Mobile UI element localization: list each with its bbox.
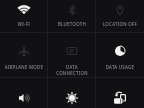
button[interactable]: Location [96,0,144,108]
button[interactable]: Airplane mode [0,0,48,108]
staticText: WI-FI [0,21,48,27]
staticText: LOCATION OFF [96,21,144,27]
button[interactable]: Brightness [48,0,96,108]
staticText: AIRPLANE MODE [0,64,48,70]
staticText: DATA USAGE [96,64,144,70]
button[interactable]: Bluetooth [48,0,96,108]
staticText: BLUETOOTH [48,21,96,27]
button[interactable]: Data usage [96,0,144,108]
button[interactable]: Sound [0,0,48,108]
staticText: DATA CONNECTION [48,64,96,76]
button[interactable]: Auto rotate [96,0,144,108]
button[interactable]: Data connection [48,0,96,108]
button[interactable]: Wi-Fi [0,0,48,108]
